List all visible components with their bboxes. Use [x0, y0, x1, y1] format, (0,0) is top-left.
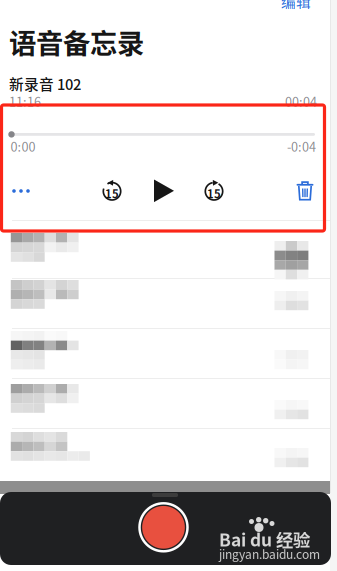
staticText: Bai du 经验	[219, 526, 310, 552]
staticText: 15	[105, 185, 119, 201]
button[interactable]: Skip back 15 seconds	[98, 178, 126, 204]
staticText: 新录音 102	[9, 73, 81, 94]
staticText: -0:04	[287, 137, 316, 155]
button[interactable]: More options	[6, 178, 36, 204]
staticText: 00:04	[285, 92, 317, 110]
button[interactable]: Play	[150, 178, 178, 204]
button[interactable]: Delete	[291, 178, 319, 204]
staticText: 0:00	[10, 137, 35, 155]
staticText: 语音备忘录	[9, 22, 144, 62]
button[interactable]: Record	[136, 500, 190, 554]
staticText: 15	[207, 185, 221, 201]
staticText: jingyan.baidu.com	[219, 545, 320, 562]
button[interactable]: Skip forward 15 seconds	[200, 178, 228, 204]
button[interactable]: 编辑	[279, 0, 313, 9]
staticText: 编辑	[281, 0, 311, 12]
staticText: 11:16	[9, 92, 41, 110]
